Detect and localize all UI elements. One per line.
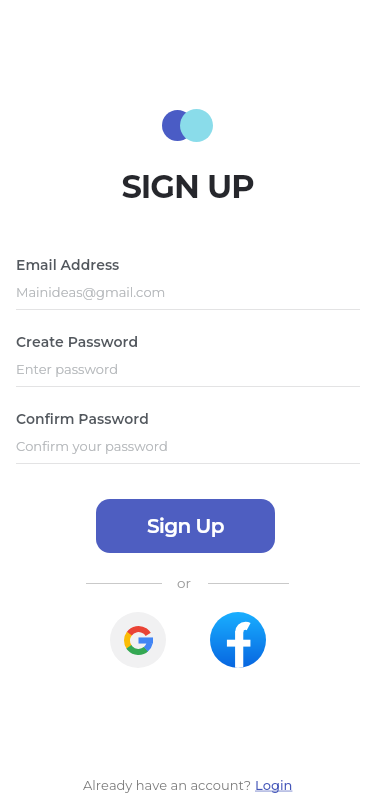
staticText: Email Address	[16, 256, 120, 273]
staticText: Mainideas@gmail.com	[16, 284, 166, 300]
staticText: or	[177, 575, 191, 591]
staticText: Already have an account?	[83, 777, 255, 793]
staticText: Confirm your password	[16, 438, 168, 454]
button[interactable]: Sign Up	[96, 499, 275, 553]
button[interactable]	[110, 612, 166, 668]
staticText: Create Password	[16, 333, 139, 350]
staticText: Confirm Password	[16, 410, 149, 427]
button[interactable]: Login	[255, 777, 293, 793]
staticText: Enter password	[16, 361, 119, 377]
staticText: Sign Up	[147, 514, 224, 538]
staticText: SIGN UP	[0, 167, 375, 206]
button[interactable]	[210, 612, 266, 668]
